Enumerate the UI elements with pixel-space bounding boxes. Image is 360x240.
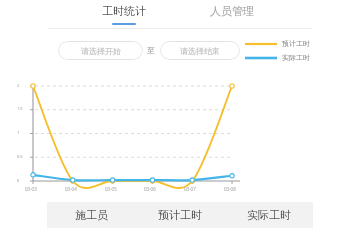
staticText: 03-06	[144, 186, 156, 192]
staticText: 实际工时	[282, 53, 310, 62]
staticText: 预计工时	[282, 39, 310, 48]
staticText: 0	[17, 178, 20, 183]
staticText: 至	[147, 45, 155, 55]
staticText: 预计工时	[158, 208, 202, 222]
staticText: 03-03	[25, 186, 37, 192]
staticText: 0.5	[17, 154, 23, 159]
button[interactable]: 人员管理	[204, 0, 260, 28]
other: 工时折线图	[0, 70, 360, 200]
staticText: 1.5	[17, 106, 23, 111]
staticText: 工时统计	[102, 4, 146, 18]
button[interactable]: 施工员	[47, 202, 135, 228]
staticText: 请选择开始	[81, 46, 121, 56]
staticText: 03-05	[105, 186, 117, 192]
staticText: 请选择结束	[180, 46, 220, 56]
staticText: 03-08	[224, 186, 236, 192]
button[interactable]: 请选择结束	[160, 41, 240, 60]
staticText: 03-07	[184, 186, 196, 192]
staticText: 1	[17, 130, 20, 135]
staticText: 实际工时	[247, 208, 291, 222]
button[interactable]: 工时统计	[96, 0, 152, 28]
staticText: 人员管理	[210, 4, 254, 18]
staticText: 施工员	[75, 208, 108, 222]
button[interactable]: 预计工时	[135, 202, 224, 228]
staticText: 03-04	[65, 186, 77, 192]
staticText: 2	[17, 83, 20, 88]
button[interactable]: 实际工时	[224, 202, 313, 228]
button[interactable]: 请选择开始	[58, 41, 143, 60]
